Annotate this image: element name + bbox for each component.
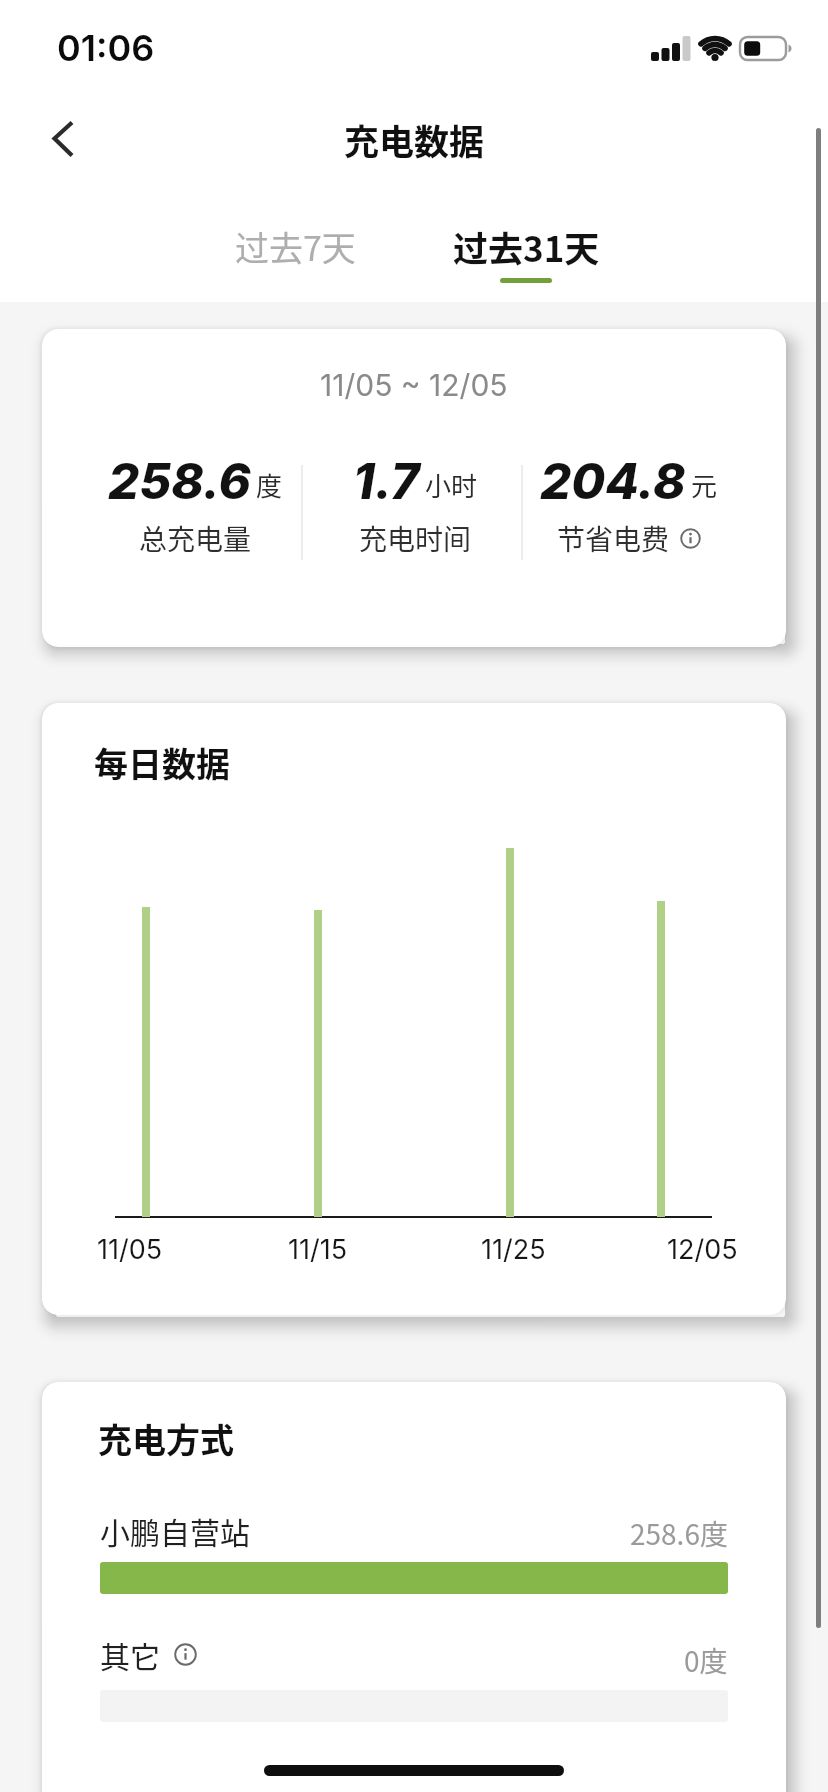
staticText: 11/05	[97, 1233, 163, 1266]
staticText: 11/05 ~ 12/05	[320, 367, 508, 403]
staticText: 11/25	[481, 1233, 546, 1266]
button[interactable]	[36, 108, 92, 170]
staticText: 节省电费	[557, 518, 670, 559]
staticText: 01:06	[57, 26, 155, 70]
staticText: 充电数据	[344, 114, 485, 165]
button[interactable]: 过去31天	[426, 218, 626, 274]
staticText: 204.8	[540, 452, 686, 511]
staticText: 每日数据	[94, 738, 230, 787]
staticText: 总充电量	[139, 518, 252, 559]
staticText: 小时	[425, 466, 478, 504]
staticText: 过去31天	[453, 221, 600, 272]
staticText: 其它	[100, 1633, 160, 1676]
staticText: 充电方式	[98, 1414, 234, 1463]
staticText: 充电时间	[359, 518, 472, 559]
button[interactable]: 其它	[100, 1633, 197, 1676]
button[interactable]: 过去7天	[195, 220, 395, 272]
staticText: 12/05	[667, 1233, 738, 1266]
staticText: 1.7	[353, 452, 420, 511]
staticText: 0度	[684, 1640, 728, 1681]
staticText: 度	[256, 466, 283, 504]
staticText: 小鹏自营站	[100, 1509, 250, 1552]
staticText: 258.6度	[630, 1513, 728, 1554]
staticText: 元	[691, 466, 718, 504]
staticText: 258.6	[108, 452, 251, 511]
staticText: 过去7天	[235, 222, 356, 271]
staticText: 11/15	[288, 1233, 348, 1266]
